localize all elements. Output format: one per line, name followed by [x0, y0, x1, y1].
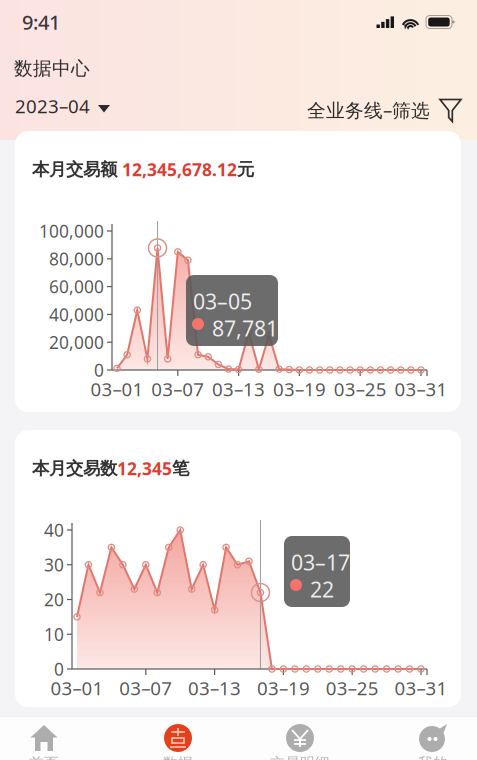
staticText: 笔: [172, 458, 189, 479]
staticText: 0: [94, 358, 104, 381]
staticText: 60,000: [49, 275, 104, 298]
button[interactable]: 数据: [135, 724, 221, 760]
staticText: 03–19: [257, 676, 310, 700]
staticText: 03–31: [394, 377, 447, 401]
staticText: 10: [44, 623, 64, 646]
button[interactable]: 我的: [390, 724, 476, 760]
staticText: 03–07: [119, 676, 172, 700]
button[interactable]: 首页: [1, 724, 87, 760]
staticText: 12,345: [117, 457, 172, 480]
staticText: 03–05: [193, 287, 252, 315]
staticText: 首页: [29, 754, 59, 760]
staticText: 40: [44, 518, 64, 541]
button[interactable]: 交易明细: [257, 724, 343, 760]
staticText: 03–01: [90, 377, 143, 401]
staticText: 我的: [418, 754, 448, 760]
staticText: 03–31: [394, 676, 447, 700]
staticText: 03–25: [334, 377, 387, 401]
staticText: 100,000: [39, 219, 104, 242]
staticText: 03–13: [212, 377, 265, 401]
staticText: 20: [44, 588, 64, 611]
staticText: 数据: [163, 754, 193, 760]
staticText: 03–07: [151, 377, 204, 401]
staticText: 2023–04: [15, 94, 90, 118]
button[interactable]: 全业务线–筛选: [232, 94, 462, 126]
staticText: 交易明细: [270, 754, 330, 760]
button[interactable]: 2023–04: [15, 90, 110, 122]
staticText: 本月交易数: [32, 458, 117, 479]
staticText: 03–19: [273, 377, 326, 401]
staticText: 9:41: [22, 9, 60, 35]
staticText: 本月交易额: [32, 159, 122, 180]
staticText: 0: [54, 657, 64, 680]
staticText: 全业务线–筛选: [307, 98, 430, 122]
staticText: 87,781: [212, 314, 278, 342]
staticText: 40,000: [49, 303, 104, 326]
staticText: 03–13: [188, 676, 241, 700]
staticText: 20,000: [49, 331, 104, 354]
staticText: 80,000: [49, 247, 104, 270]
staticText: 数据中心: [14, 57, 90, 80]
staticText: 03–25: [326, 676, 379, 700]
staticText: 03–17: [291, 548, 350, 576]
staticText: 12,345,678.12: [122, 158, 237, 181]
staticText: 元: [237, 159, 254, 180]
staticText: 30: [44, 553, 64, 576]
staticText: 03–01: [50, 676, 103, 700]
staticText: 22: [310, 575, 334, 603]
